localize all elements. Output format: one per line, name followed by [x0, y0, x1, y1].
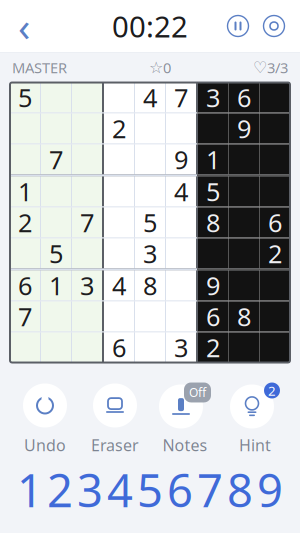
staticText: 2 — [18, 206, 32, 239]
button[interactable]: Back — [0, 7, 36, 45]
button[interactable]: 8 — [225, 466, 255, 514]
staticText: 7 — [197, 460, 223, 520]
staticText: 6 — [268, 206, 282, 239]
staticText: 6 — [206, 300, 220, 333]
staticText: 1 — [18, 175, 32, 208]
staticText: 0 — [163, 58, 171, 77]
staticText: Hint — [239, 434, 271, 456]
staticText: 9 — [206, 269, 220, 302]
staticText: 8 — [143, 269, 157, 302]
staticText: 2 — [112, 112, 126, 145]
staticText: 3 — [206, 81, 220, 114]
staticText: 3 — [174, 331, 188, 364]
staticText: 8 — [206, 206, 220, 239]
button[interactable]: Eraser — [80, 382, 150, 456]
staticText: ☆ — [149, 58, 163, 77]
staticText: 5 — [137, 460, 163, 520]
staticText: 5 — [206, 175, 220, 208]
button[interactable]: 2 — [220, 382, 290, 456]
button[interactable]: 9 — [255, 466, 285, 514]
staticText: 3 — [143, 237, 157, 270]
staticText: 5 — [18, 81, 32, 114]
button[interactable]: 5 — [135, 466, 165, 514]
button[interactable]: 7 — [195, 466, 225, 514]
button[interactable]: ↺ — [10, 382, 80, 456]
staticText: 4 — [107, 460, 133, 520]
button[interactable]: 3 — [75, 466, 105, 514]
staticText: 6 — [167, 460, 193, 520]
staticText: 6 — [237, 81, 251, 114]
staticText: 9 — [174, 143, 188, 176]
staticText: ‹ — [18, 0, 30, 52]
button[interactable]: 4 — [105, 466, 135, 514]
staticText: 5 — [49, 237, 63, 270]
staticText: 9 — [257, 460, 283, 520]
staticText: MASTER — [12, 58, 67, 77]
staticText: 2 — [206, 331, 220, 364]
staticText: 1 — [49, 269, 63, 302]
staticText: 6 — [18, 269, 32, 302]
staticText: 7 — [80, 206, 94, 239]
button[interactable]: Settings — [250, 14, 286, 38]
staticText: 3 — [80, 269, 94, 302]
staticText: 8 — [237, 300, 251, 333]
staticText: 7 — [174, 81, 188, 114]
staticText: 2 — [268, 237, 282, 270]
staticText: Notes — [162, 434, 207, 456]
staticText: ♡ — [253, 58, 267, 77]
staticText: 7 — [18, 300, 32, 333]
staticText: Eraser — [91, 434, 139, 456]
button[interactable]: 1 — [15, 466, 45, 514]
staticText: 3/3 — [267, 58, 288, 77]
staticText: 5 — [143, 206, 157, 239]
staticText: 7 — [49, 143, 63, 176]
staticText: 00:22 — [112, 6, 188, 45]
staticText: 9 — [237, 112, 251, 145]
staticText: 6 — [112, 331, 126, 364]
staticText: 2 — [47, 460, 73, 520]
staticText: 8 — [227, 460, 253, 520]
staticText: Undo — [24, 434, 66, 456]
button[interactable]: Off — [150, 382, 220, 456]
staticText: Off — [189, 384, 206, 400]
staticText: 1 — [17, 460, 43, 520]
button[interactable]: 2 — [45, 466, 75, 514]
staticText: 4 — [143, 81, 157, 114]
staticText: 4 — [174, 175, 188, 208]
staticText: 4 — [112, 269, 126, 302]
staticText: 3 — [77, 460, 103, 520]
staticText: 1 — [206, 143, 220, 176]
button[interactable]: Pause — [226, 14, 250, 38]
button[interactable]: 6 — [165, 466, 195, 514]
staticText: 2 — [268, 382, 276, 399]
